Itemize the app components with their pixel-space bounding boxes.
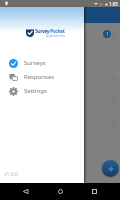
- button[interactable]: [0, 155, 120, 177]
- other: Location: [4, 1, 9, 6]
- staticText: Settings: [24, 87, 47, 95]
- staticText: Responses: [24, 73, 55, 81]
- button[interactable]: Recent apps: [86, 183, 103, 200]
- staticText: Pocket: [50, 27, 65, 34]
- staticText: Survey: [35, 27, 50, 34]
- button[interactable]: Back: [17, 183, 34, 200]
- button[interactable]: Surveys: [0, 56, 84, 70]
- button[interactable]: Add survey: [102, 160, 119, 177]
- button[interactable]: [0, 67, 120, 89]
- staticText: v1.0.0: [4, 171, 18, 178]
- staticText: by QuestionPro: [46, 34, 65, 38]
- button[interactable]: [0, 111, 120, 133]
- staticText: 1: [106, 31, 109, 37]
- button[interactable]: Responses: [0, 70, 84, 84]
- staticText: 1:05: [109, 1, 118, 7]
- button[interactable]: Home: [52, 183, 69, 200]
- staticText: Surveys: [24, 59, 46, 67]
- button[interactable]: Settings: [0, 84, 84, 98]
- button[interactable]: 1: [0, 23, 120, 45]
- button[interactable]: [0, 89, 120, 111]
- button[interactable]: [0, 133, 120, 155]
- button[interactable]: [0, 45, 120, 67]
